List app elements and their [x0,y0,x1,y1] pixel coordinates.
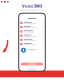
button[interactable] [19,25,45,29]
button[interactable] [19,21,45,25]
button[interactable] [19,42,45,46]
button[interactable] [19,38,45,42]
button[interactable]: Play voice message [21,48,26,53]
staticText: Modern messaging for everyone [20,9,44,11]
staticText: Voice SMS [22,3,42,9]
button[interactable] [19,29,45,33]
button[interactable] [19,34,45,38]
button[interactable] [21,63,43,65]
